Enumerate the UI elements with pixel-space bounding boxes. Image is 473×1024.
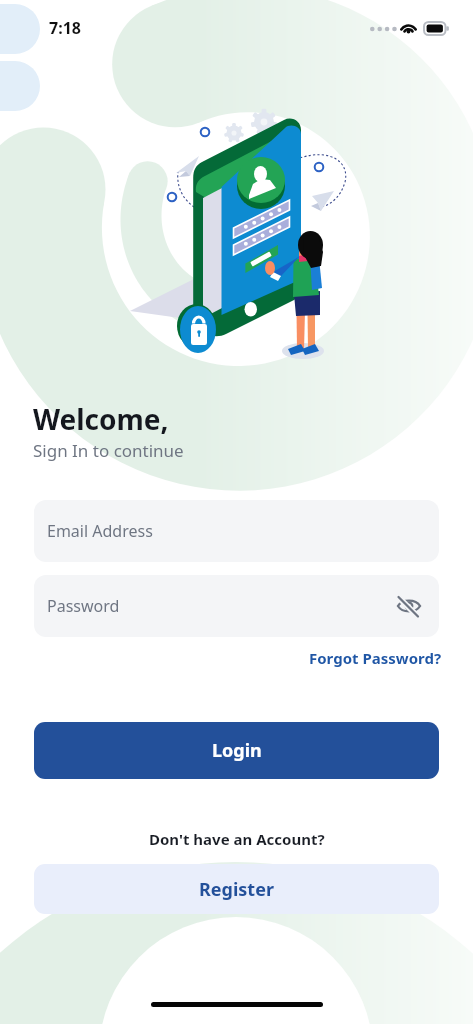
button[interactable]: Password: [34, 575, 439, 637]
staticText: Don't have an Account?: [149, 829, 325, 849]
staticText: Sign In to continue: [33, 439, 184, 462]
staticText: Email Address: [47, 520, 153, 542]
button[interactable]: Email Address: [34, 500, 439, 562]
button[interactable]: Login: [34, 722, 439, 779]
staticText: Login: [212, 738, 262, 763]
staticText: Welcome,: [33, 400, 169, 438]
staticText: Password: [47, 595, 120, 617]
button[interactable]: Forgot Password?: [309, 648, 442, 668]
staticText: Register: [199, 877, 274, 902]
staticText: Forgot Password?: [309, 648, 442, 668]
staticText: 7:18: [49, 17, 81, 39]
button[interactable]: Register: [34, 864, 439, 914]
button[interactable]: Toggle password visibility: [394, 591, 424, 621]
